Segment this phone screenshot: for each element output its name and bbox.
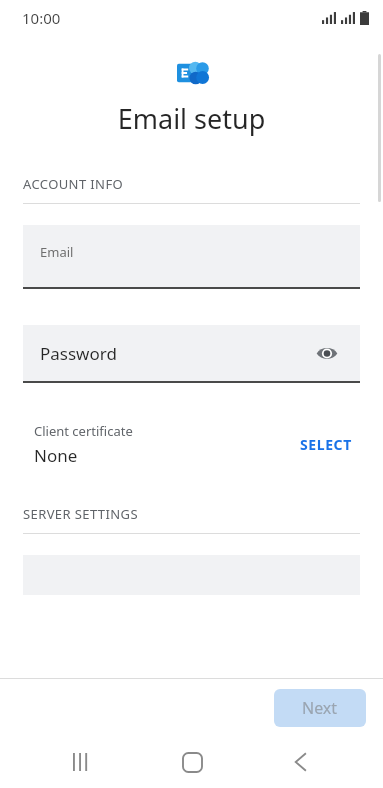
staticText: Email setup [0,100,383,137]
staticText: SELECT [300,435,352,454]
button[interactable]: Back [273,736,329,788]
staticText: Client certificate [34,422,133,440]
staticText: SERVER SETTINGS [23,505,138,523]
staticText: ACCOUNT INFO [23,175,124,193]
staticText: 10:00 [22,8,61,28]
button[interactable]: Show password [312,338,342,368]
button[interactable]: Client certificate [23,422,360,467]
button[interactable]: Home [164,736,220,788]
staticText: Next [302,697,338,719]
staticText: Password [40,342,117,365]
staticText: Email [40,243,74,261]
button[interactable]: SELECT [292,427,360,462]
button[interactable]: Next [274,689,366,727]
staticText: None [34,444,78,467]
button[interactable]: Email [23,225,360,289]
button[interactable]: Recents [54,736,110,788]
button[interactable]: Password [23,325,360,383]
